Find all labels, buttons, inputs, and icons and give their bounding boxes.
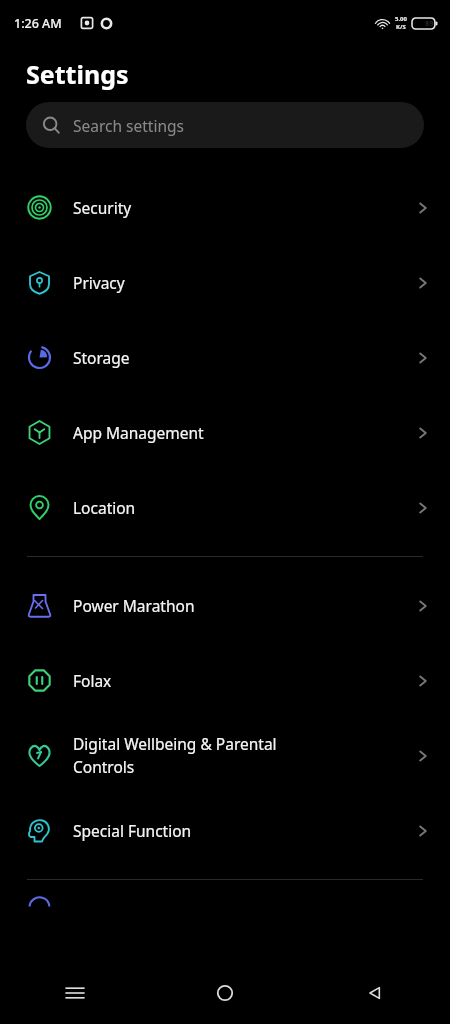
- button[interactable]: Digital Wellbeing & Parental Controls: [0, 718, 450, 793]
- button[interactable]: Back: [300, 962, 450, 1024]
- button[interactable]: [0, 880, 450, 908]
- staticText: Storage: [73, 347, 395, 368]
- staticText: Search settings: [73, 115, 184, 136]
- staticText: K/S: [396, 23, 406, 31]
- button[interactable]: Security: [0, 170, 450, 245]
- staticText: 1:26 AM: [14, 15, 62, 32]
- button[interactable]: Power Marathon: [0, 568, 450, 643]
- staticText: Folax: [73, 670, 395, 691]
- button[interactable]: Home: [150, 962, 300, 1024]
- staticText: Power Marathon: [73, 595, 395, 616]
- button[interactable]: App Management: [0, 395, 450, 470]
- button[interactable]: Recent apps: [0, 962, 150, 1024]
- staticText: Privacy: [73, 272, 395, 293]
- staticText: Digital Wellbeing & Parental Controls: [73, 733, 395, 778]
- button[interactable]: Folax: [0, 643, 450, 718]
- staticText: Settings: [26, 57, 129, 91]
- staticText: App Management: [73, 422, 395, 443]
- staticText: Location: [73, 497, 395, 518]
- staticText: 5.00: [395, 15, 407, 23]
- button[interactable]: Special Function: [0, 793, 450, 868]
- staticText: Special Function: [73, 820, 395, 841]
- button[interactable]: Privacy: [0, 245, 450, 320]
- button[interactable]: Storage: [0, 320, 450, 395]
- button[interactable]: Search settings: [26, 102, 424, 148]
- staticText: Security: [73, 197, 395, 218]
- button[interactable]: Location: [0, 470, 450, 545]
- staticText: 89: [425, 18, 434, 28]
